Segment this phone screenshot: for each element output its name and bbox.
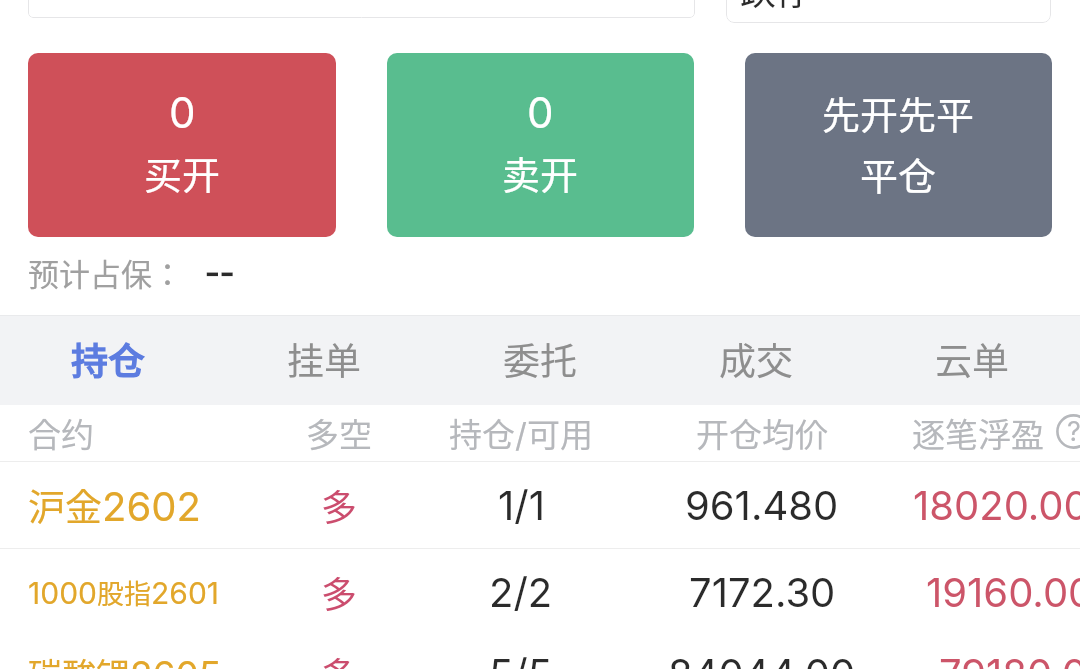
- staticText: 买开: [144, 145, 221, 200]
- staticText: 多空: [306, 409, 372, 457]
- staticText: 预计占保：: [28, 250, 183, 295]
- staticText: ?: [1067, 415, 1080, 448]
- staticText: 挂单: [287, 332, 361, 386]
- staticText: 多: [321, 566, 358, 618]
- staticText: 5/5: [489, 649, 553, 669]
- staticText: 84044.00: [668, 649, 856, 669]
- staticText: 持仓: [71, 332, 145, 386]
- staticText: 云单: [935, 332, 1009, 386]
- button[interactable]: 1000股指2601: [0, 549, 1080, 635]
- staticText: 卖开: [502, 145, 579, 200]
- button[interactable]: 沪金2602: [0, 462, 1080, 548]
- staticText: 先开先平: [822, 85, 975, 140]
- staticText: 跌停: [740, 0, 813, 15]
- staticText: 18020.00: [913, 481, 1080, 529]
- staticText: 持仓/可用: [449, 409, 593, 457]
- staticText: 成交: [719, 332, 793, 386]
- staticText: 0: [169, 87, 196, 138]
- button[interactable]: 碳酸锂2605: [0, 630, 1080, 669]
- staticText: 79180.00: [939, 649, 1080, 669]
- staticText: 961.480: [685, 481, 839, 529]
- staticText: 0: [527, 87, 554, 138]
- staticText: 开仓均价: [696, 409, 828, 457]
- button[interactable]: 委托: [432, 316, 648, 405]
- button[interactable]: 先开先平: [745, 53, 1052, 237]
- staticText: 委托: [503, 332, 577, 386]
- button[interactable]: 0: [387, 53, 694, 237]
- staticText: 沪金2602: [28, 478, 201, 532]
- button[interactable]: 持仓: [0, 316, 216, 405]
- staticText: 1/1: [498, 481, 545, 529]
- button[interactable]: 跌停: [726, 0, 1051, 23]
- button[interactable]: Help: [1056, 414, 1080, 449]
- staticText: 1000股指2601: [28, 573, 220, 612]
- staticText: 2/2: [489, 568, 553, 616]
- staticText: 逐笔浮盈: [912, 409, 1044, 457]
- staticText: 多: [321, 479, 358, 531]
- staticText: 多: [321, 647, 358, 669]
- button[interactable]: 云单: [864, 316, 1080, 405]
- staticText: 碳酸锂2605: [28, 649, 222, 669]
- button[interactable]: 成交: [648, 316, 864, 405]
- staticText: 7172.30: [689, 568, 836, 616]
- button[interactable]: 0: [28, 53, 336, 237]
- button[interactable]: 挂单: [216, 316, 432, 405]
- staticText: 19160.00: [926, 568, 1080, 616]
- button[interactable]: [28, 0, 695, 18]
- staticText: 平仓: [860, 146, 937, 201]
- staticText: 合约: [28, 409, 94, 457]
- staticText: --: [205, 253, 235, 292]
